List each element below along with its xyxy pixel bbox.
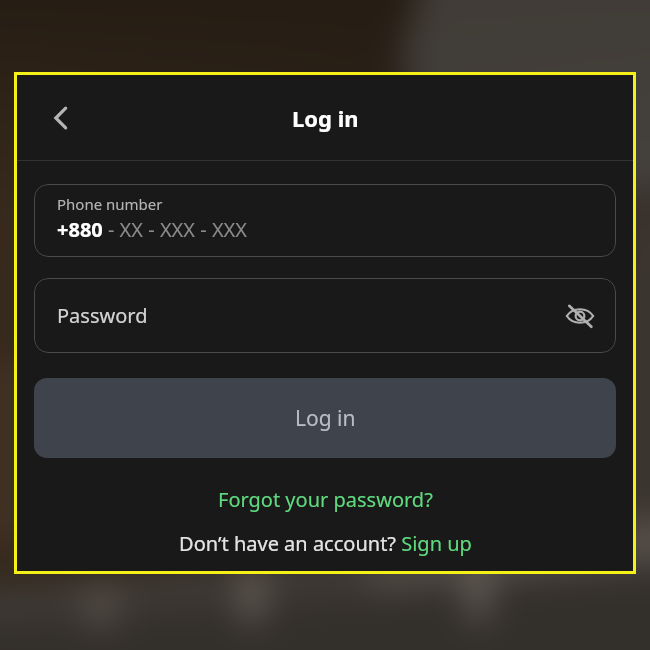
staticText: Password (57, 302, 148, 329)
button[interactable]: Forgot your password? (17, 480, 633, 518)
button[interactable]: Log in (34, 378, 616, 458)
staticText: Forgot your password? (218, 486, 433, 513)
staticText: Phone number (57, 194, 163, 214)
button[interactable]: Show password (557, 293, 603, 339)
staticText: Log in (292, 103, 359, 133)
button[interactable]: Back (35, 92, 87, 144)
staticText: Don’t have an account? Sign up (179, 530, 472, 557)
staticText: Log in (295, 404, 356, 433)
button[interactable]: Phone number (34, 184, 616, 257)
button[interactable]: Password (34, 278, 616, 353)
staticText: +880 - XX - XXX - XXX (57, 216, 248, 243)
button[interactable]: Don’t have an account? Sign up (17, 525, 633, 561)
